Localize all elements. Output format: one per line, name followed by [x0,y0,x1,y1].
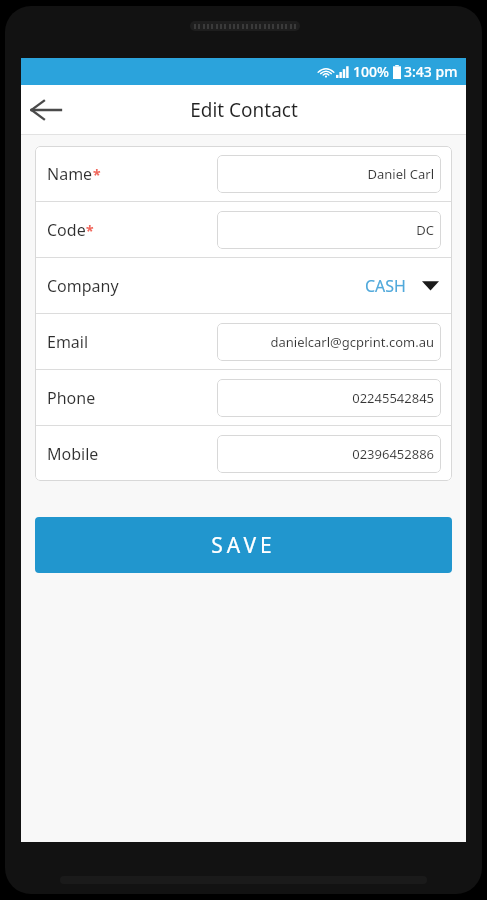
button[interactable]: Phone [35,370,452,425]
staticText: Phone [47,387,96,409]
staticText: Mobile [47,443,99,465]
staticText: 02396452886 [352,445,434,463]
staticText: * [93,165,101,184]
staticText: * [86,221,94,240]
staticText: Name [47,163,93,185]
button[interactable]: Mobile [35,426,452,481]
staticText: 3:43 pm [404,62,458,81]
button[interactable]: Back [21,86,69,134]
staticText: Daniel Carl [367,165,434,183]
staticText: Company [47,275,119,297]
staticText: DC [416,221,434,239]
button[interactable]: Email [35,314,452,369]
staticText: SAVE [211,531,276,560]
button[interactable]: SAVE [35,517,452,573]
staticText: Edit Contact [190,97,298,123]
staticText: CASH [365,275,406,297]
staticText: 02245542845 [352,389,434,407]
staticText: danielcarl@gcprint.com.au [270,333,434,351]
staticText: Email [47,331,89,353]
staticText: 100% [353,62,389,81]
staticText: Code [47,219,86,241]
button[interactable]: Code [35,202,452,257]
button[interactable]: Name [35,146,452,201]
button[interactable]: Company [35,258,452,313]
